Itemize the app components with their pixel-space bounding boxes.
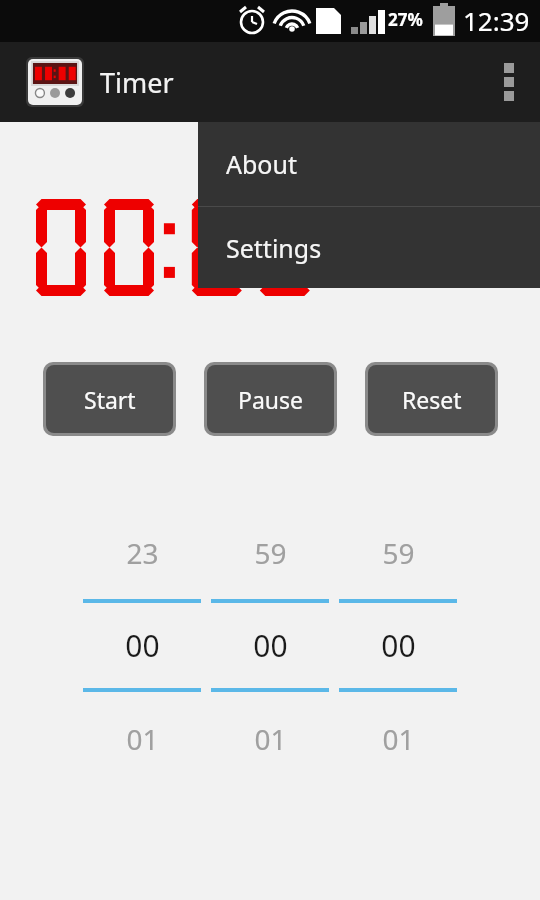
- staticText: Start: [84, 384, 136, 415]
- button[interactable]: 23: [78, 508, 206, 800]
- button[interactable]: Reset: [368, 365, 495, 433]
- staticText: 59: [382, 534, 415, 572]
- button[interactable]: Settings: [198, 207, 540, 288]
- staticText: 23: [126, 534, 159, 572]
- staticText: 01: [126, 720, 159, 758]
- button[interactable]: Pause: [207, 365, 334, 433]
- staticText: 27%: [388, 8, 423, 31]
- button[interactable]: More options: [478, 42, 540, 122]
- staticText: 12:39: [463, 3, 530, 38]
- button[interactable]: 59: [206, 508, 334, 800]
- staticText: 00: [125, 625, 160, 666]
- button[interactable]: Start: [46, 365, 173, 433]
- staticText: 00: [381, 625, 416, 666]
- staticText: Timer: [100, 64, 174, 101]
- button[interactable]: 59: [334, 508, 462, 800]
- staticText: 00: [253, 625, 288, 666]
- staticText: Settings: [226, 231, 322, 265]
- button[interactable]: About: [198, 122, 540, 206]
- staticText: About: [226, 147, 297, 181]
- staticText: 59: [254, 534, 287, 572]
- staticText: Pause: [238, 384, 304, 415]
- staticText: 01: [382, 720, 415, 758]
- staticText: 01: [254, 720, 287, 758]
- staticText: Reset: [402, 384, 462, 415]
